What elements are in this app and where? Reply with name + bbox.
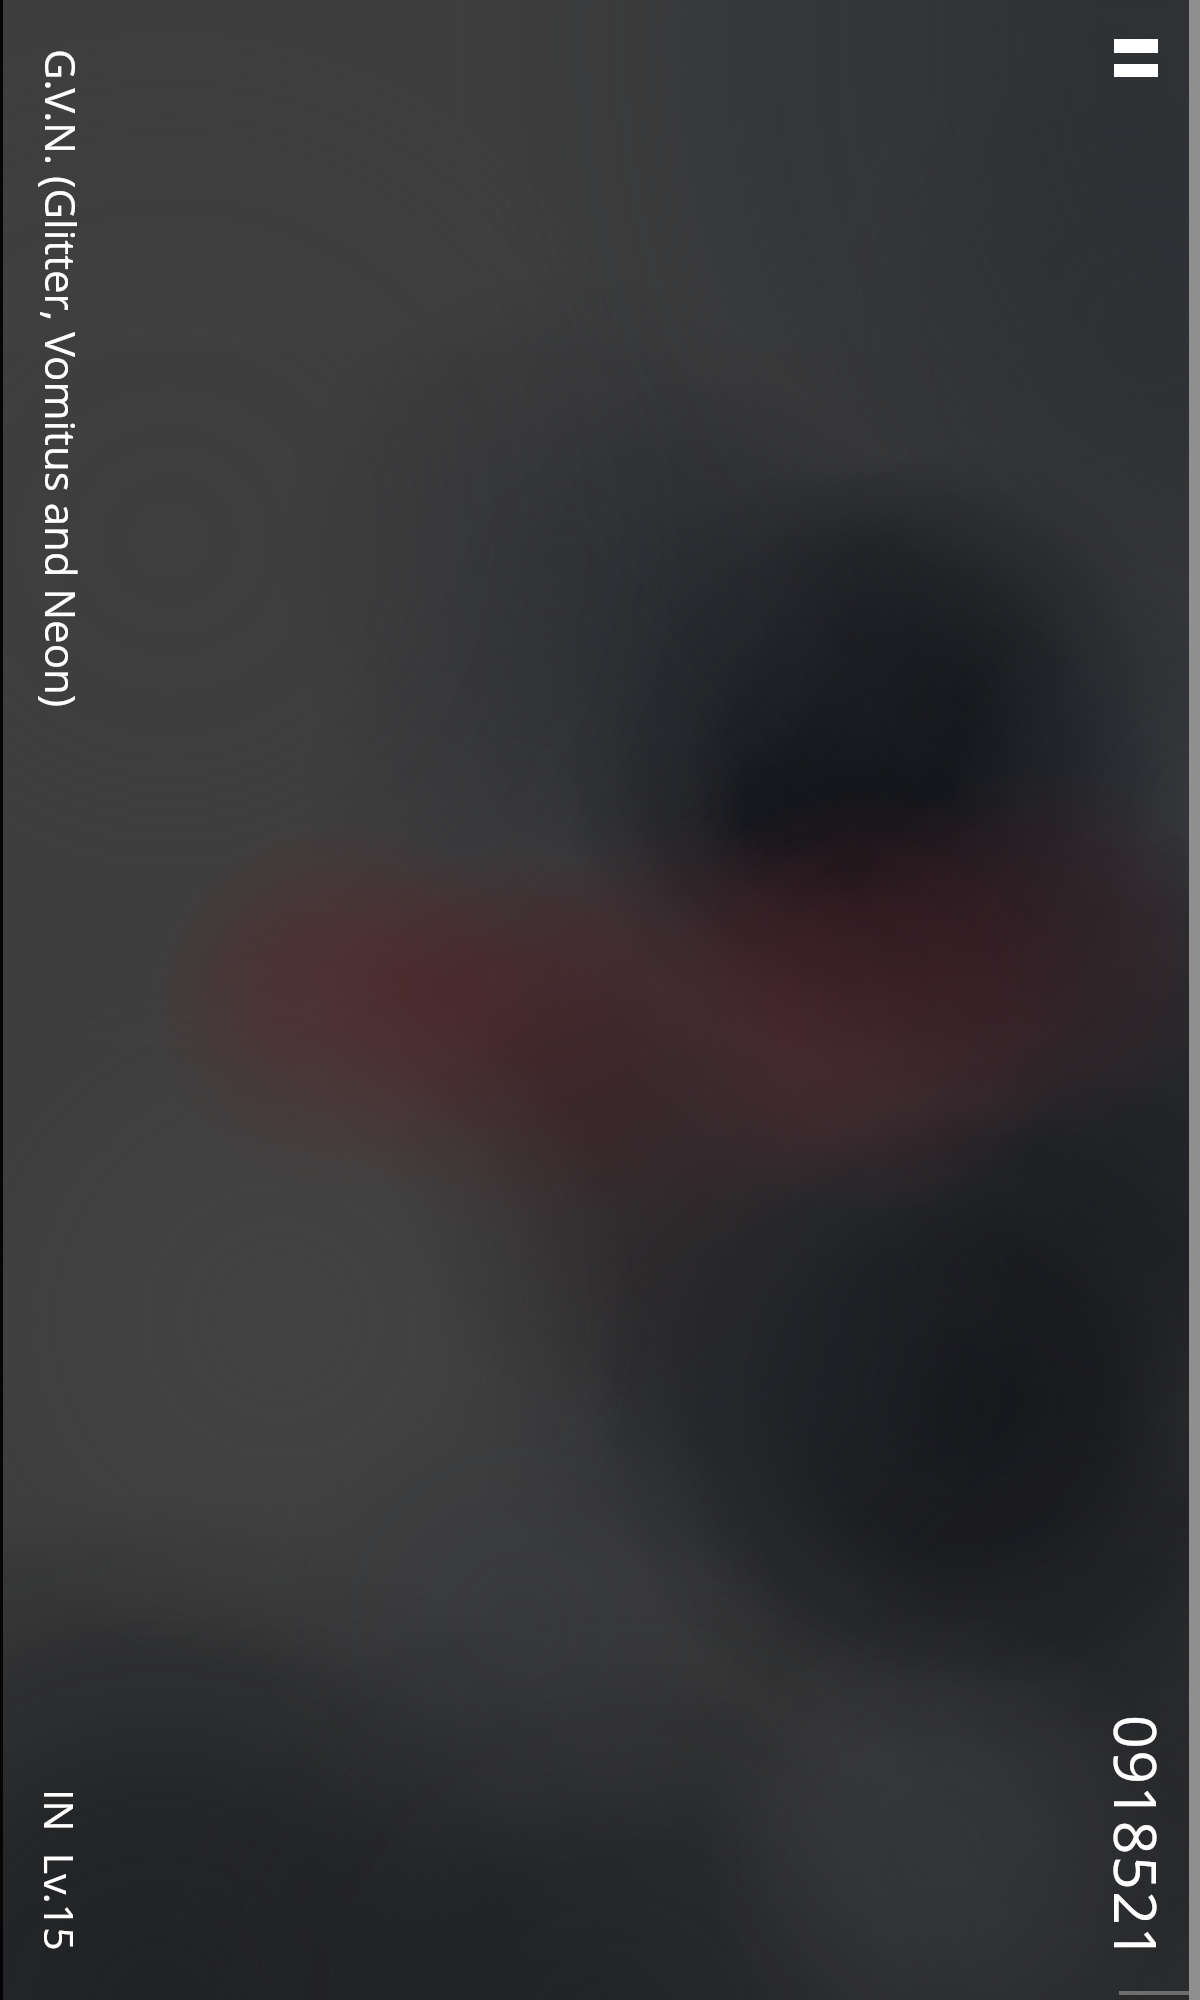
- button[interactable]: G.V.N. (Glitter, Vomitus and Neon): [33, 49, 90, 708]
- staticText: 0918521: [1097, 1715, 1177, 1962]
- staticText: G.V.N. (Glitter, Vomitus and Neon): [33, 49, 90, 708]
- button[interactable]: 0918521: [1097, 1715, 1177, 1962]
- button[interactable]: IN Lv.15: [32, 1789, 88, 1951]
- button[interactable]: Pause: [1114, 39, 1158, 77]
- staticText: IN Lv.15: [32, 1789, 88, 1951]
